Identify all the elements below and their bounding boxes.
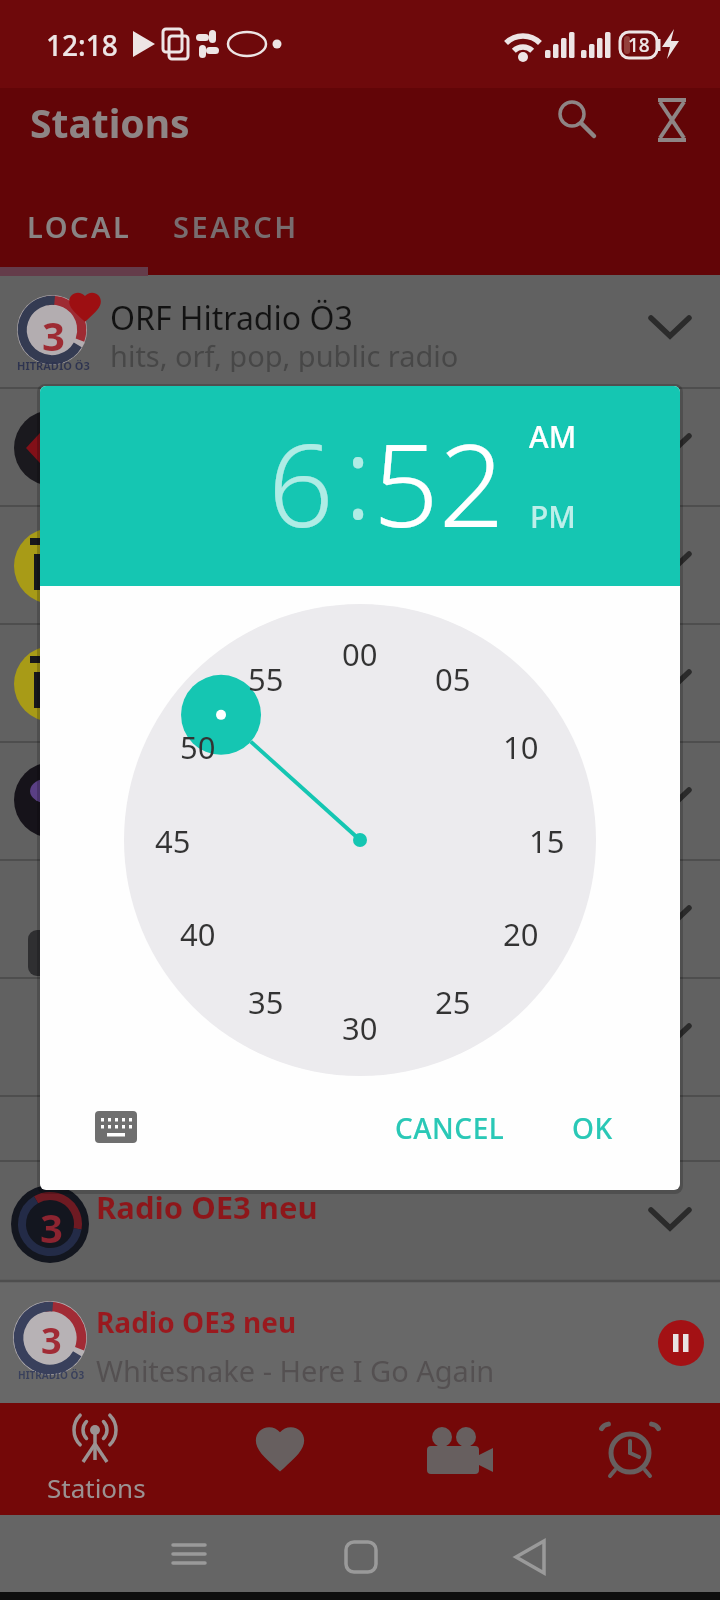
staticText: 05 <box>435 658 471 698</box>
staticText: SEARCH <box>173 207 299 246</box>
staticText: LOCAL <box>27 207 132 246</box>
button[interactable]: LOCAL <box>24 206 134 246</box>
staticText: HITRADIO Ö3 <box>18 1368 85 1381</box>
button[interactable]: AM <box>513 416 593 456</box>
button[interactable] <box>548 92 600 144</box>
staticText: 12:18 <box>46 26 118 62</box>
staticText: 3 <box>41 1316 62 1356</box>
staticText: 50 <box>180 726 216 766</box>
staticText: 20 <box>503 913 539 953</box>
staticText: 18 <box>628 32 650 58</box>
button[interactable] <box>0 276 720 388</box>
button[interactable] <box>544 1408 716 1512</box>
staticText: 55 <box>248 658 284 698</box>
staticText: CANCEL <box>395 1109 505 1147</box>
button[interactable] <box>656 1318 706 1368</box>
button[interactable]: PM <box>513 496 593 536</box>
staticText: 3 <box>42 308 65 352</box>
staticText: PM <box>530 496 576 536</box>
button[interactable] <box>368 1408 540 1512</box>
button[interactable]: 6 <box>221 404 381 544</box>
staticText: 30 <box>342 1007 378 1047</box>
staticText: 35 <box>248 981 284 1021</box>
button[interactable] <box>646 92 698 144</box>
staticText: ORF Hitradio Ö3 <box>110 296 353 334</box>
staticText: Whitesnake - Here I Go Again <box>96 1351 495 1390</box>
button[interactable] <box>490 1530 570 1590</box>
staticText: AM <box>529 416 577 456</box>
staticText: 15 <box>529 820 565 860</box>
staticText: 3 <box>40 1200 63 1244</box>
staticText: HITRADIO Ö3 <box>17 358 90 372</box>
button[interactable]: CANCEL <box>380 1108 520 1148</box>
staticText: 00 <box>342 633 378 673</box>
button[interactable] <box>8 1408 180 1512</box>
staticText: 45 <box>155 820 191 860</box>
staticText: Radio OE3 neu <box>96 1303 297 1339</box>
button[interactable] <box>0 1283 640 1403</box>
button[interactable] <box>150 1530 230 1590</box>
button[interactable] <box>80 1100 150 1156</box>
button[interactable] <box>0 1162 720 1280</box>
button[interactable] <box>192 1408 364 1512</box>
button[interactable]: 52 <box>359 404 519 544</box>
staticText: : <box>344 396 373 536</box>
staticText: 6 <box>268 404 334 544</box>
staticText: Stations <box>30 96 190 148</box>
staticText: Radio OE3 neu <box>96 1186 318 1222</box>
staticText: 25 <box>435 981 471 1021</box>
staticText: 10 <box>503 726 539 766</box>
staticText: Stations <box>47 1470 146 1504</box>
button[interactable]: OK <box>552 1108 632 1148</box>
button[interactable] <box>320 1530 400 1590</box>
staticText: 40 <box>180 913 216 953</box>
staticText: 52 <box>373 404 505 544</box>
staticText: OK <box>572 1109 613 1147</box>
button[interactable]: SEARCH <box>166 206 306 246</box>
staticText: hits, orf, pop, public radio <box>110 336 459 372</box>
